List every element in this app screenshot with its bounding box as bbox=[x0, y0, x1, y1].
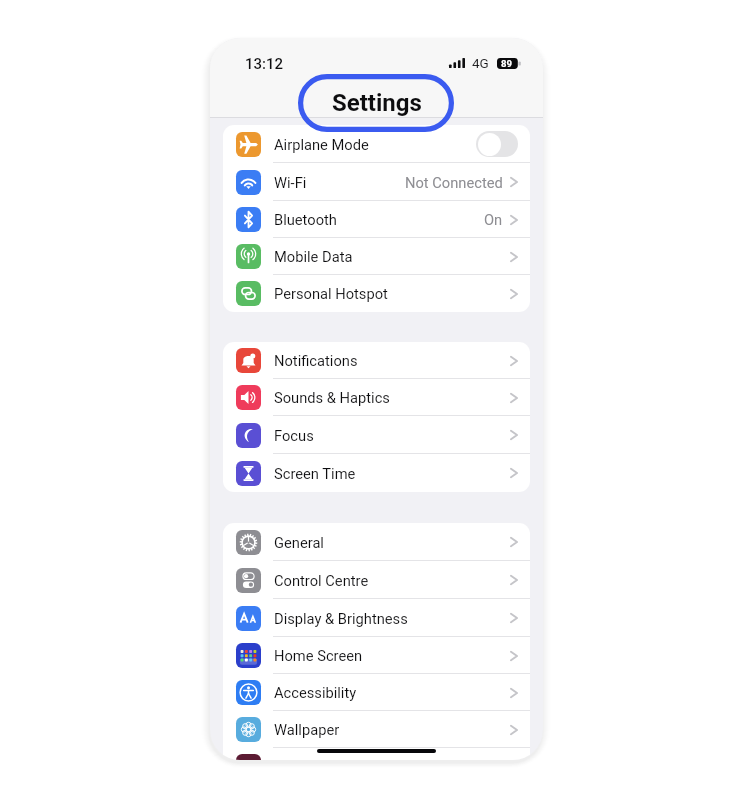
staticText: Settings bbox=[332, 89, 422, 117]
button[interactable]: Wi-Fi bbox=[223, 163, 530, 201]
button[interactable]: Focus bbox=[223, 416, 530, 454]
staticText: Mobile Data bbox=[274, 248, 353, 265]
staticText: Accessibility bbox=[274, 684, 357, 701]
staticText: Wallpaper bbox=[274, 721, 340, 738]
button[interactable]: Notifications bbox=[223, 342, 530, 379]
button[interactable]: Bluetooth bbox=[223, 201, 530, 238]
button[interactable]: Mobile Data bbox=[223, 238, 530, 275]
button[interactable]: Control Centre bbox=[223, 561, 530, 599]
staticText: Display & Brightness bbox=[274, 610, 408, 627]
staticText: Wi-Fi bbox=[274, 174, 307, 191]
staticText: Airplane Mode bbox=[274, 136, 369, 153]
button[interactable]: Screen Time bbox=[223, 454, 530, 492]
staticText: Screen Time bbox=[274, 465, 356, 482]
staticText: 89 bbox=[501, 58, 513, 69]
staticText: On bbox=[484, 211, 503, 228]
button[interactable]: Airplane Mode bbox=[223, 125, 530, 163]
button[interactable]: Display & Brightness bbox=[223, 599, 530, 637]
staticText: Control Centre bbox=[274, 572, 369, 589]
staticText: Focus bbox=[274, 427, 314, 444]
staticText: Bluetooth bbox=[274, 211, 337, 228]
button[interactable]: Wallpaper bbox=[223, 711, 530, 748]
staticText: 13:12 bbox=[245, 55, 284, 71]
button[interactable]: Accessibility bbox=[223, 674, 530, 711]
button[interactable]: Sounds & Haptics bbox=[223, 379, 530, 416]
button[interactable]: Airplane Mode toggle bbox=[476, 131, 518, 157]
button[interactable]: Home Screen bbox=[223, 637, 530, 674]
staticText: Personal Hotspot bbox=[274, 285, 388, 302]
staticText: Not Connected bbox=[405, 174, 503, 191]
button[interactable]: Siri & Search bbox=[223, 748, 530, 760]
button[interactable]: Personal Hotspot bbox=[223, 275, 530, 312]
staticText: Sounds & Haptics bbox=[274, 389, 390, 406]
staticText: General bbox=[274, 534, 324, 551]
staticText: 4G bbox=[472, 55, 489, 71]
button[interactable]: General bbox=[223, 523, 530, 561]
staticText: Home Screen bbox=[274, 647, 363, 664]
staticText: Notifications bbox=[274, 352, 358, 369]
